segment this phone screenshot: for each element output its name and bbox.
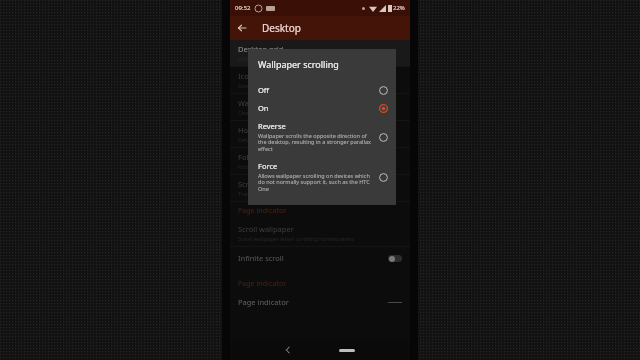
staticText: Grid size for apps and widgets on the de… [238,55,357,62]
staticText: Off [258,85,270,95]
staticText: Desktop [262,21,301,35]
button[interactable]: Icon layout [230,67,410,93]
staticText: 09:52 [235,4,251,12]
button[interactable]: Scroll effect [230,175,410,201]
staticText: Scroll wallpaper when scrolling homescre… [238,235,354,242]
staticText: Icon layout [238,71,278,81]
button[interactable]: Home [332,342,362,358]
staticText: Page indicator [238,206,287,216]
staticText: Allows wallpaper scrolling on devices wh… [258,172,373,193]
button[interactable]: Back [230,16,254,40]
staticText: Homescreen [238,125,283,135]
staticText: Default page [238,136,272,143]
staticText: Page indicator [238,279,287,289]
staticText: Desktop grid [238,44,284,54]
staticText: Wallpaper [238,98,274,108]
staticText: Folder style [238,163,268,170]
button[interactable]: Wallpaper [230,94,410,120]
staticText: Infinite scroll [238,253,284,263]
staticText: 22% [393,4,405,12]
staticText: Page indicator [238,297,289,307]
button[interactable]: On [248,99,396,117]
button[interactable]: Off [248,81,396,99]
button[interactable]: Desktop grid [230,40,410,66]
button[interactable]: Page indicator [230,293,410,311]
staticText: Scroll effect [238,179,279,189]
staticText: Reverse [258,121,286,131]
button[interactable]: Force [248,157,396,197]
staticText: Folders [238,152,264,162]
button[interactable]: Infinite scroll [230,247,410,269]
staticText: Choose wallpaper [238,109,285,116]
staticText: Force [258,161,278,171]
button[interactable]: Reverse [248,117,396,157]
staticText: On [258,103,269,113]
staticText: Wallpaper scrolls the opposite direction… [258,132,373,153]
staticText: Size and label [238,82,274,89]
staticText: Scroll wallpaper [238,224,294,234]
button[interactable]: Scroll wallpaper [230,220,410,246]
staticText: Wallpaper scrolling [258,58,339,70]
button[interactable]: Homescreen [230,121,410,147]
staticText: Transition animation [238,190,292,197]
button[interactable]: Folders [230,148,410,174]
button[interactable]: Back [278,340,298,360]
